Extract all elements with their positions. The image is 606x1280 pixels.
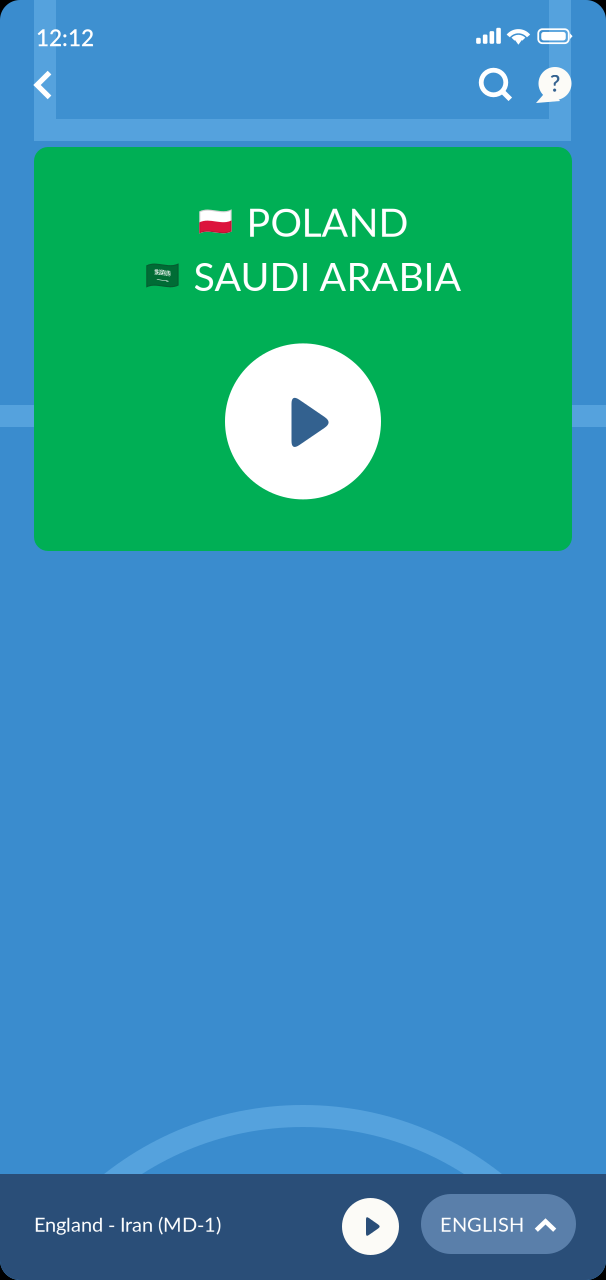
staticText: ? [550, 69, 560, 97]
staticText: 🇵🇱 [197, 205, 232, 238]
button[interactable]: Help [530, 61, 578, 109]
staticText: England - Iran (MD-1) [34, 1212, 221, 1236]
button[interactable]: Search [472, 61, 520, 109]
button[interactable]: Play [342, 1198, 399, 1255]
staticText: SAUDI ARABIA [193, 252, 461, 299]
button[interactable]: 🇵🇱 [34, 147, 572, 551]
staticText: 12:12 [36, 24, 94, 51]
staticText: 🇸🇦 [144, 259, 179, 292]
staticText: ENGLISH [440, 1212, 524, 1236]
staticText: POLAND [246, 198, 408, 245]
button[interactable]: Back [19, 61, 67, 109]
button[interactable]: ENGLISH [421, 1194, 576, 1254]
